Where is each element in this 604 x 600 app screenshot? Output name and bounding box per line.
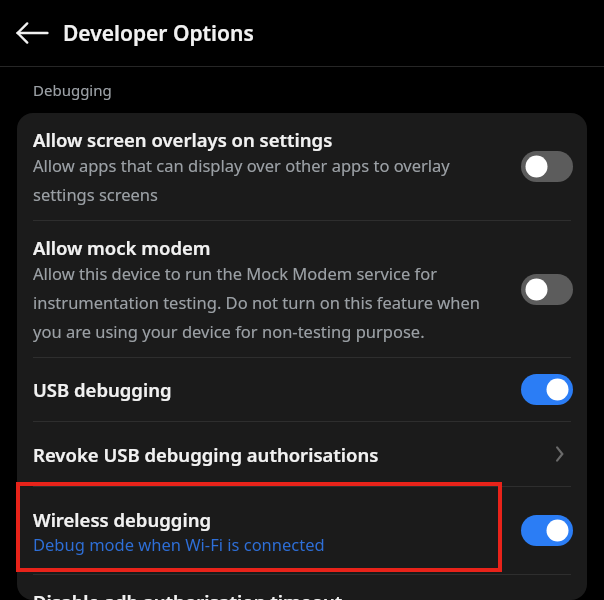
staticText: Debugging — [33, 80, 112, 100]
staticText: Debug mode when Wi-Fi is connected — [33, 533, 325, 555]
button[interactable]: Toggle on — [521, 515, 573, 546]
button[interactable]: Revoke USB debugging authorisations — [17, 422, 587, 486]
staticText: Revoke USB debugging authorisations — [33, 442, 379, 467]
button[interactable]: Allow screen overlays on settings — [17, 113, 587, 220]
staticText: Developer Options — [63, 19, 254, 48]
staticText: Wireless debugging — [33, 507, 212, 532]
staticText: Allow apps that can display over other a… — [33, 154, 511, 206]
button[interactable]: Back — [9, 9, 57, 57]
staticText: Disable adb authorisation timeout — [33, 589, 343, 600]
staticText: USB debugging — [33, 377, 172, 402]
button[interactable]: Disable adb authorisation timeout — [17, 575, 587, 600]
staticText: Allow screen overlays on settings — [33, 127, 333, 152]
button[interactable]: Toggle off — [521, 151, 573, 182]
button[interactable]: Wireless debugging — [17, 487, 587, 574]
button[interactable]: Allow mock modem — [17, 221, 587, 357]
staticText: Allow mock modem — [33, 235, 211, 260]
button[interactable]: Toggle off — [521, 274, 573, 305]
button[interactable]: USB debugging — [17, 358, 587, 421]
staticText: Allow this device to run the Mock Modem … — [33, 262, 511, 343]
button[interactable]: Toggle on — [521, 374, 573, 405]
